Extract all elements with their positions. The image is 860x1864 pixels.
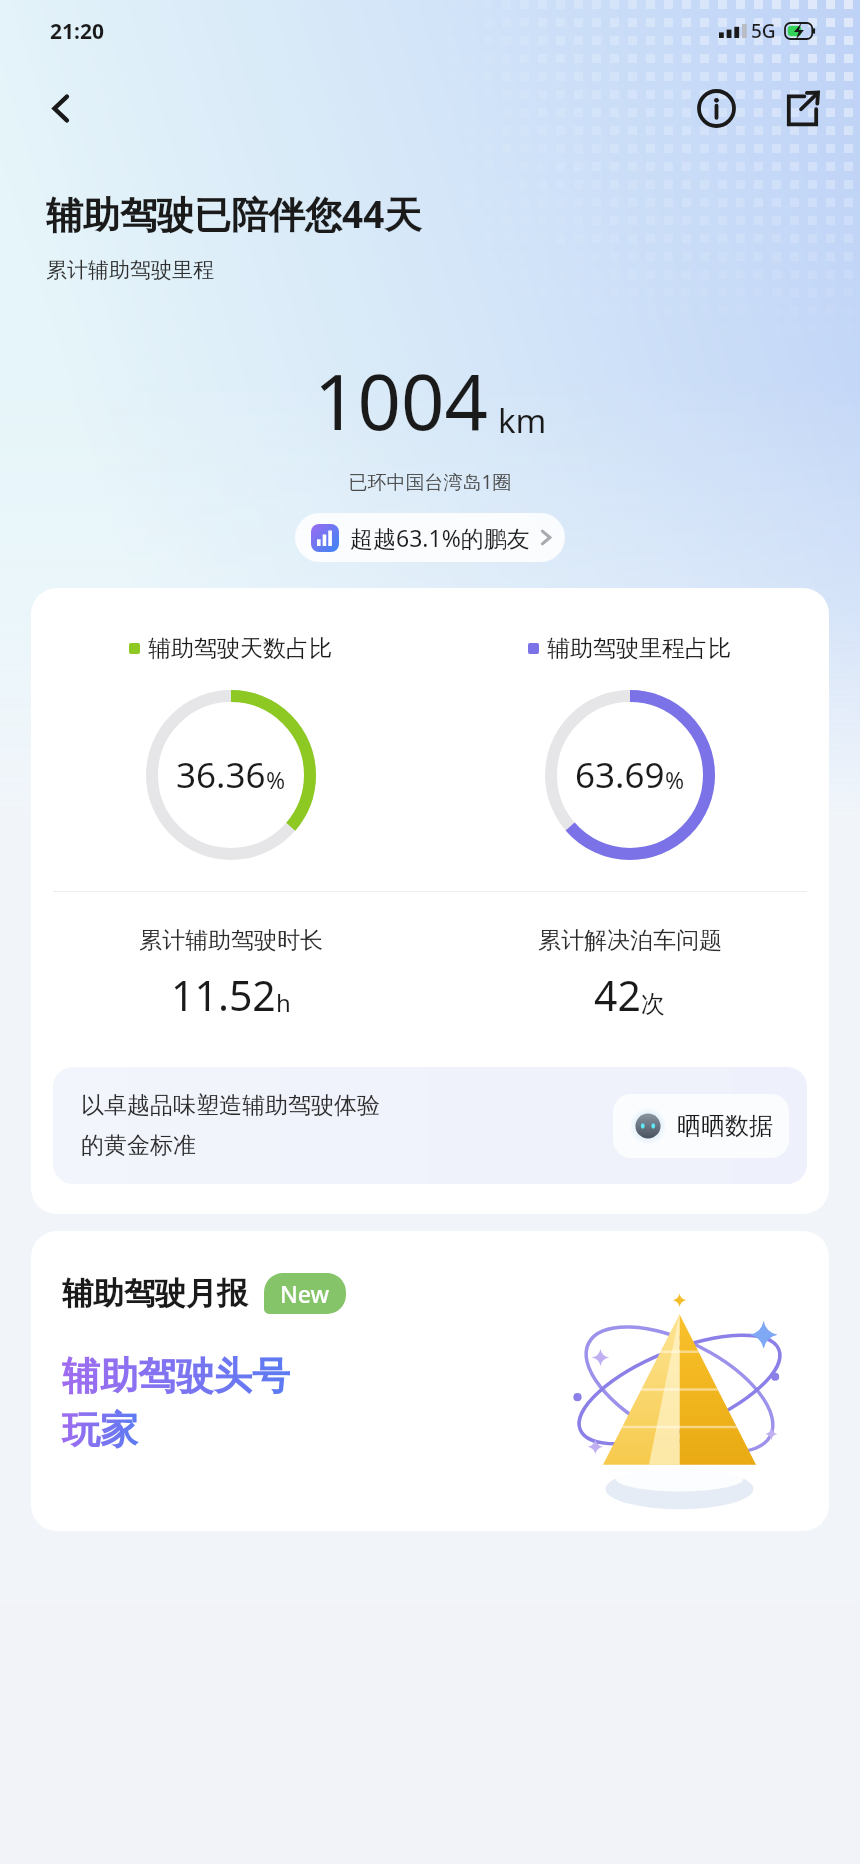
staticText: 累计辅助驾驶时长 [139, 926, 323, 955]
staticText: 的黄金标准 [81, 1131, 196, 1160]
staticText: 以卓越品味塑造辅助驾驶体验 [81, 1091, 380, 1120]
staticText: 辅助驾驶头号 [62, 1352, 290, 1400]
staticText: 63.69 [575, 751, 665, 799]
staticText: 累计辅助驾驶里程 [46, 257, 214, 283]
button[interactable]: Share [772, 78, 832, 138]
staticText: 辅助驾驶已陪伴您44天 [46, 188, 422, 239]
staticText: 1004 [314, 349, 488, 453]
staticText: 辅助驾驶里程占比 [547, 634, 731, 663]
staticText: % [665, 764, 685, 795]
staticText: 42 [594, 967, 641, 1023]
staticText: h [276, 986, 291, 1019]
staticText: 已环中国台湾岛1圈 [0, 469, 860, 495]
staticText: 辅助驾驶天数占比 [148, 634, 332, 663]
staticText: 36.36 [176, 751, 266, 799]
button[interactable]: 晒晒数据 [613, 1094, 789, 1158]
staticText: % [266, 764, 286, 795]
staticText: 辅助驾驶月报 [62, 1274, 248, 1313]
staticText: 5G [751, 18, 776, 44]
staticText: 累计解决泊车问题 [538, 926, 722, 955]
staticText: 21:20 [50, 17, 104, 46]
button[interactable]: 超越63.1%的鹏友 [295, 513, 565, 562]
staticText: 玩家 [62, 1406, 138, 1454]
staticText: km [498, 398, 547, 443]
staticText: 11.52 [171, 967, 276, 1023]
staticText: 次 [641, 989, 665, 1019]
button[interactable]: Info [686, 78, 746, 138]
button[interactable]: 辅助驾驶月报 [31, 1231, 829, 1531]
staticText: 晒晒数据 [677, 1111, 773, 1141]
staticText: 超越63.1%的鹏友 [350, 522, 530, 553]
staticText: New [280, 1278, 330, 1309]
button[interactable]: Back [32, 79, 90, 137]
